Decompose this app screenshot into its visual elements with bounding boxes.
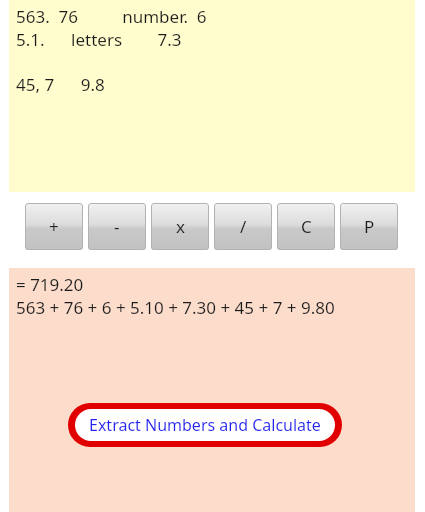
staticText: Extract Numbers and Calculate xyxy=(89,414,321,436)
staticText: + xyxy=(49,215,59,238)
button[interactable]: Extract Numbers and Calculate xyxy=(68,403,342,447)
button[interactable]: / xyxy=(214,203,272,250)
staticText: - xyxy=(114,215,120,238)
button[interactable]: 563. 76 number. 6 xyxy=(9,0,415,192)
button[interactable]: - xyxy=(88,203,146,250)
button[interactable]: + xyxy=(25,203,83,250)
button[interactable]: x xyxy=(151,203,209,250)
staticText: 563. 76 number. 6 xyxy=(16,5,207,28)
staticText: C xyxy=(301,215,312,238)
staticText: 563 + 76 + 6 + 5.10 + 7.30 + 45 + 7 + 9.… xyxy=(16,296,335,319)
staticText: 5.1. letters 7.3 xyxy=(16,28,182,51)
staticText: P xyxy=(364,215,375,238)
staticText: x xyxy=(176,215,185,238)
staticText: = 719.20 xyxy=(16,273,84,296)
button[interactable]: C xyxy=(277,203,335,250)
staticText: / xyxy=(240,215,247,238)
button[interactable]: P xyxy=(340,203,398,250)
staticText: 45, 7 9.8 xyxy=(16,73,105,96)
